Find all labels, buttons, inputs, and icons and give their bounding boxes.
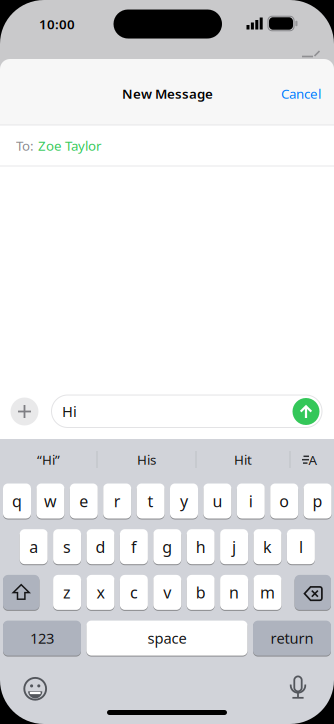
staticText: o xyxy=(279,490,289,512)
staticText: t xyxy=(148,490,154,512)
staticText: space xyxy=(147,628,186,648)
button[interactable]: a xyxy=(20,528,48,565)
button[interactable]: l xyxy=(287,528,315,565)
staticText: c xyxy=(130,582,138,603)
staticText: l xyxy=(299,536,303,557)
button[interactable]: n xyxy=(220,574,248,611)
button[interactable]: z xyxy=(53,574,81,611)
staticText: y xyxy=(180,490,188,512)
button[interactable]: “Hi” xyxy=(1,441,96,477)
button[interactable] xyxy=(285,675,311,701)
staticText: Zoe Taylor xyxy=(38,137,102,154)
button[interactable]: f xyxy=(120,528,148,565)
button[interactable] xyxy=(22,676,48,702)
staticText: u xyxy=(212,490,222,512)
staticText: s xyxy=(63,536,71,557)
staticText: Hit xyxy=(234,451,252,468)
button[interactable]: r xyxy=(103,482,131,519)
button[interactable]: Cancel xyxy=(281,85,321,102)
staticText: v xyxy=(163,582,171,603)
button[interactable]: space xyxy=(86,620,247,657)
staticText: f xyxy=(131,536,137,557)
staticText: His xyxy=(137,451,156,468)
staticText: g xyxy=(162,536,172,557)
button[interactable]: b xyxy=(187,574,215,611)
staticText: z xyxy=(63,582,71,603)
button[interactable]: q xyxy=(3,482,31,519)
staticText: d xyxy=(95,536,105,557)
button[interactable]: j xyxy=(220,528,248,565)
button[interactable]: v xyxy=(153,574,181,611)
button[interactable]: x xyxy=(86,574,114,611)
staticText: i xyxy=(249,490,253,512)
button[interactable]: m xyxy=(253,574,281,611)
staticText: m xyxy=(260,582,275,603)
staticText: “Hi” xyxy=(37,451,60,468)
staticText: A xyxy=(308,451,317,469)
staticText: New Message xyxy=(122,85,213,102)
staticText: Cancel xyxy=(281,85,321,102)
staticText: x xyxy=(96,582,104,603)
button[interactable]: w xyxy=(36,482,64,519)
staticText: Hi xyxy=(62,401,77,421)
staticText: p xyxy=(313,490,323,512)
button[interactable] xyxy=(10,397,38,425)
staticText: To: xyxy=(16,137,34,154)
button[interactable]: 123 xyxy=(3,620,81,657)
button[interactable]: h xyxy=(187,528,215,565)
button[interactable] xyxy=(292,398,319,425)
button[interactable]: k xyxy=(253,528,281,565)
button[interactable]: To: xyxy=(0,125,334,166)
button[interactable]: i xyxy=(237,482,265,519)
staticText: a xyxy=(29,536,38,557)
button[interactable]: return xyxy=(253,620,331,657)
button[interactable]: p xyxy=(304,482,332,519)
staticText: 10:00 xyxy=(39,15,75,33)
button[interactable]: y xyxy=(170,482,198,519)
button[interactable]: Hit xyxy=(198,441,288,477)
button[interactable] xyxy=(295,574,331,611)
button[interactable]: t xyxy=(137,482,165,519)
button[interactable]: A xyxy=(299,451,319,468)
button[interactable]: s xyxy=(53,528,81,565)
button[interactable]: g xyxy=(153,528,181,565)
button[interactable]: Hi xyxy=(51,395,322,427)
staticText: b xyxy=(196,582,206,603)
button[interactable]: d xyxy=(86,528,114,565)
staticText: h xyxy=(196,536,206,557)
staticText: n xyxy=(229,582,239,603)
button[interactable]: His xyxy=(99,441,194,477)
button[interactable] xyxy=(3,574,39,611)
staticText: e xyxy=(79,490,88,512)
button[interactable]: o xyxy=(270,482,298,519)
staticText: return xyxy=(270,628,313,648)
staticText: w xyxy=(44,490,57,512)
button[interactable]: c xyxy=(120,574,148,611)
button[interactable]: e xyxy=(70,482,98,519)
staticText: r xyxy=(114,490,121,512)
staticText: j xyxy=(232,536,236,557)
button[interactable]: u xyxy=(203,482,231,519)
staticText: q xyxy=(12,490,22,512)
staticText: k xyxy=(263,536,272,557)
staticText: 123 xyxy=(30,628,54,648)
